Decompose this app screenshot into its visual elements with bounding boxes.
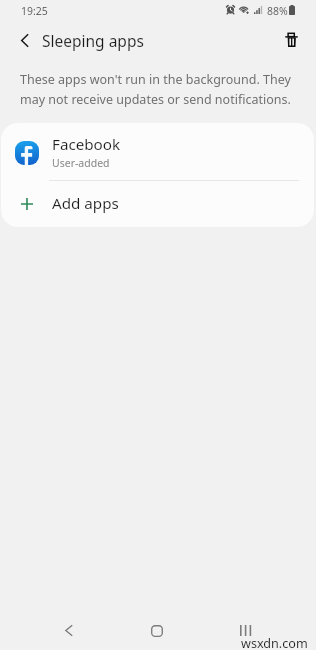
button[interactable]: Facebook xyxy=(1,123,314,180)
button[interactable]: Back xyxy=(46,610,90,650)
staticText: 19:25 xyxy=(21,4,48,18)
staticText: Sleeping apps xyxy=(42,30,144,51)
staticText: These apps won't run in the background. … xyxy=(20,71,300,108)
button[interactable]: Add apps xyxy=(1,180,314,227)
button[interactable]: Navigate up xyxy=(8,24,41,57)
staticText: 88% xyxy=(267,4,288,18)
staticText: User-added xyxy=(52,156,110,170)
staticText: wsxdn.com xyxy=(241,635,308,650)
button[interactable]: Recent apps xyxy=(224,610,268,650)
button[interactable]: Home xyxy=(135,610,179,650)
button[interactable]: Delete xyxy=(275,24,308,57)
staticText: Facebook xyxy=(52,134,121,155)
staticText: Add apps xyxy=(52,193,119,214)
